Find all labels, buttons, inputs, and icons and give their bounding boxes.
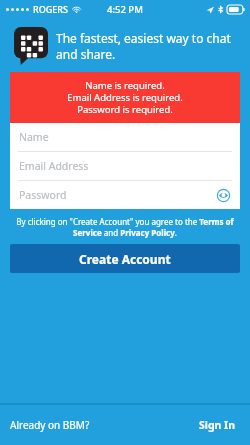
staticText: Password [19, 188, 215, 202]
staticText: Sign In [199, 418, 236, 432]
staticText: Name is required. Email Address is requi… [67, 79, 183, 116]
staticText: Already on BBM? [10, 418, 195, 432]
button[interactable]: Name [10, 123, 240, 151]
staticText: 4:52 PM [107, 3, 143, 16]
staticText: Create Account [79, 251, 171, 267]
button[interactable]: Password [10, 181, 240, 209]
staticText: The fastest, easiest way to chat and sha… [56, 30, 242, 62]
staticText: Email Address [19, 159, 231, 173]
button[interactable]: Show password [215, 187, 231, 203]
staticText: Name [19, 130, 231, 144]
staticText: ROGERS [33, 3, 68, 15]
button[interactable]: Email Address [10, 152, 240, 180]
button[interactable]: Create Account [10, 244, 240, 273]
button[interactable]: By clicking on "Create Account" you agre… [14, 216, 236, 238]
staticText: By clicking on "Create Account" you agre… [14, 216, 236, 238]
button[interactable]: Sign In [195, 414, 240, 436]
